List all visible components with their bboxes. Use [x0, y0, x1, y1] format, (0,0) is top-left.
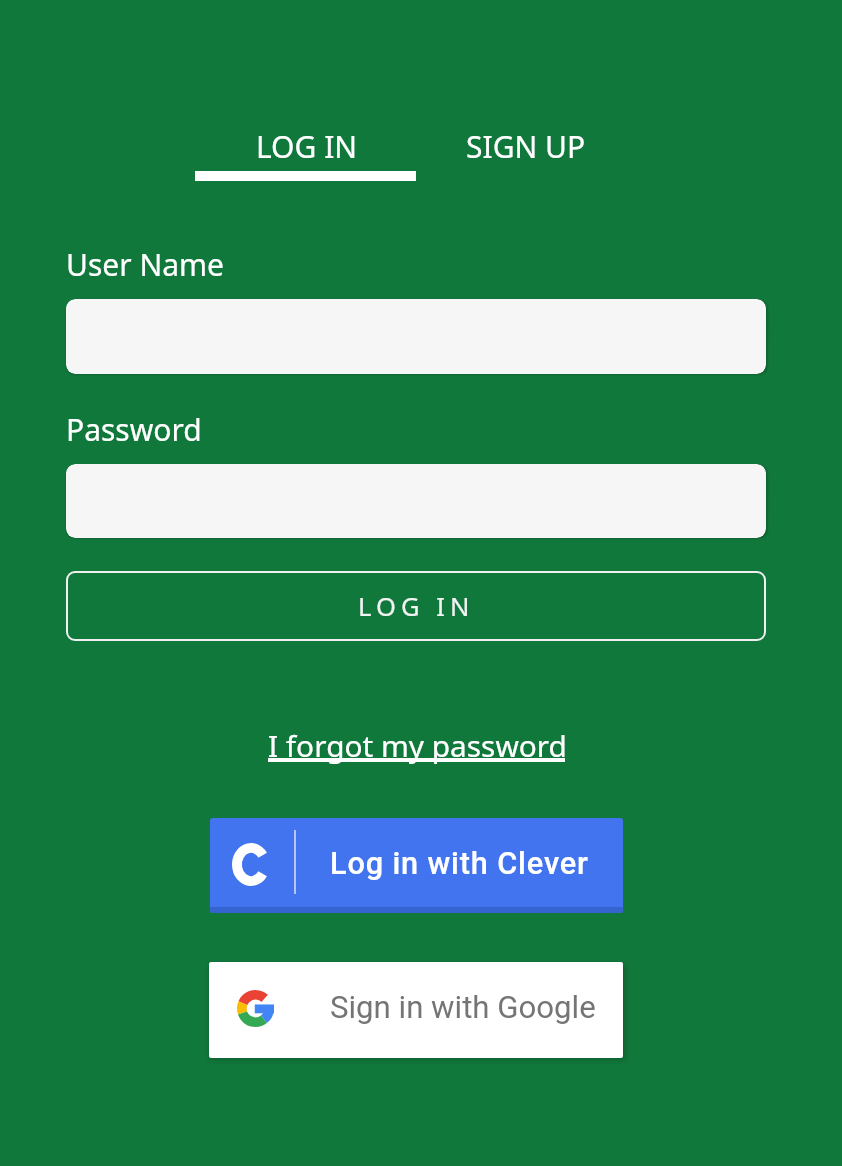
button[interactable]: Clever logo — [210, 818, 623, 913]
staticText: Password — [66, 409, 202, 450]
staticText: Log in with Clever — [330, 846, 589, 882]
staticText: I forgot my password — [268, 725, 567, 766]
staticText: LOG IN — [256, 126, 358, 167]
button[interactable]: LOG IN — [231, 112, 383, 180]
button[interactable]: User name input field — [66, 299, 766, 374]
button[interactable]: Google logo — [209, 962, 623, 1058]
staticText: User Name — [66, 244, 225, 285]
button[interactable]: I forgot my password — [268, 725, 567, 770]
staticText: LOG IN — [358, 589, 475, 624]
other: Clever logo — [232, 843, 270, 886]
staticText: SIGN UP — [466, 126, 586, 167]
button[interactable]: LOG IN — [66, 571, 766, 641]
staticText: Sign in with Google — [330, 989, 596, 1026]
button[interactable]: Password input field — [66, 464, 766, 538]
other: Google logo — [237, 990, 274, 1027]
button[interactable]: SIGN UP — [450, 112, 602, 180]
